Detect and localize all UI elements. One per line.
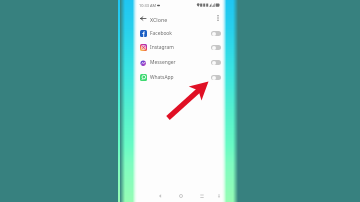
staticText: WhatsApp xyxy=(150,74,174,81)
button[interactable]: Back xyxy=(136,13,147,24)
button[interactable]: Hide keyboard xyxy=(213,189,225,202)
button[interactable]: Back xyxy=(154,189,166,202)
staticText: Facebook xyxy=(150,30,172,37)
staticText: Instagram xyxy=(150,44,174,51)
button[interactable]: Facebook xyxy=(133,26,226,41)
button[interactable]: Messenger xyxy=(133,55,226,70)
button[interactable]: WhatsApp xyxy=(133,70,226,85)
button[interactable]: More options xyxy=(213,13,223,23)
staticText: Messenger xyxy=(150,59,176,66)
staticText: XClone xyxy=(150,16,168,23)
button[interactable]: Toggle xyxy=(211,31,221,36)
button[interactable]: Toggle xyxy=(211,60,221,65)
button[interactable]: Recent apps xyxy=(196,189,208,202)
staticText: 10:33 AM xyxy=(139,3,156,8)
button[interactable]: Instagram xyxy=(133,40,226,55)
button[interactable]: Home xyxy=(175,189,187,202)
button[interactable]: Toggle xyxy=(211,45,221,50)
button[interactable]: Toggle xyxy=(211,75,221,80)
